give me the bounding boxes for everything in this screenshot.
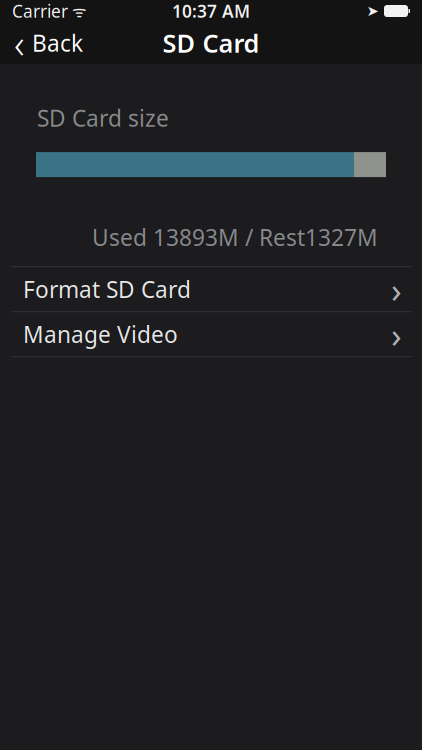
staticText: SD Card [162, 26, 259, 60]
button[interactable]: Format SD Card [0, 267, 422, 311]
staticText: Manage Video [23, 319, 178, 349]
staticText: Back [32, 28, 83, 58]
staticText: ➤ [366, 3, 378, 19]
button[interactable]: ‹ [0, 22, 97, 64]
staticText: › [391, 266, 402, 312]
staticText: Used 13893M / Rest1327M [92, 222, 378, 252]
button[interactable]: Manage Video [0, 312, 422, 356]
staticText: SD Card size [37, 103, 169, 133]
staticText: › [391, 311, 402, 357]
staticText: ‹ [14, 16, 25, 69]
staticText: Format SD Card [23, 274, 191, 304]
staticText: 10:37 AM [172, 0, 250, 22]
staticText: ᯤ [68, 0, 87, 22]
staticText: Carrier [12, 0, 68, 22]
